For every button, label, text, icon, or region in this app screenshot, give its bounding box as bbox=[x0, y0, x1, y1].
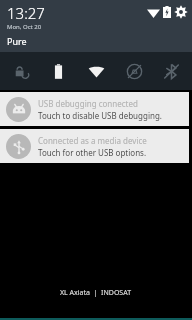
button[interactable]: Bluetooth off bbox=[154, 54, 188, 88]
button[interactable]: Ringer off bbox=[117, 54, 151, 88]
button[interactable]: Wi-Fi bbox=[79, 54, 113, 88]
staticText: XL Axiata | INDOSAT bbox=[60, 288, 132, 298]
staticText: Touch to disable USB debugging. bbox=[38, 110, 162, 121]
button[interactable]: Pure bbox=[7, 35, 27, 47]
button[interactable]: Connected as a media device bbox=[0, 129, 189, 163]
staticText: Pure bbox=[7, 35, 27, 47]
button[interactable]: Battery bbox=[41, 54, 75, 88]
staticText: USB debugging connected bbox=[38, 98, 138, 109]
staticText: Touch for other USB options. bbox=[38, 147, 147, 158]
staticText: 13:27 bbox=[7, 3, 45, 23]
button[interactable]: Rotation lock bbox=[4, 54, 38, 88]
button[interactable]: USB debugging connected bbox=[0, 92, 189, 126]
staticText: Connected as a media device bbox=[38, 135, 147, 146]
staticText: Mon, Oct 20 bbox=[7, 23, 42, 31]
button[interactable]: Settings bbox=[174, 5, 188, 19]
